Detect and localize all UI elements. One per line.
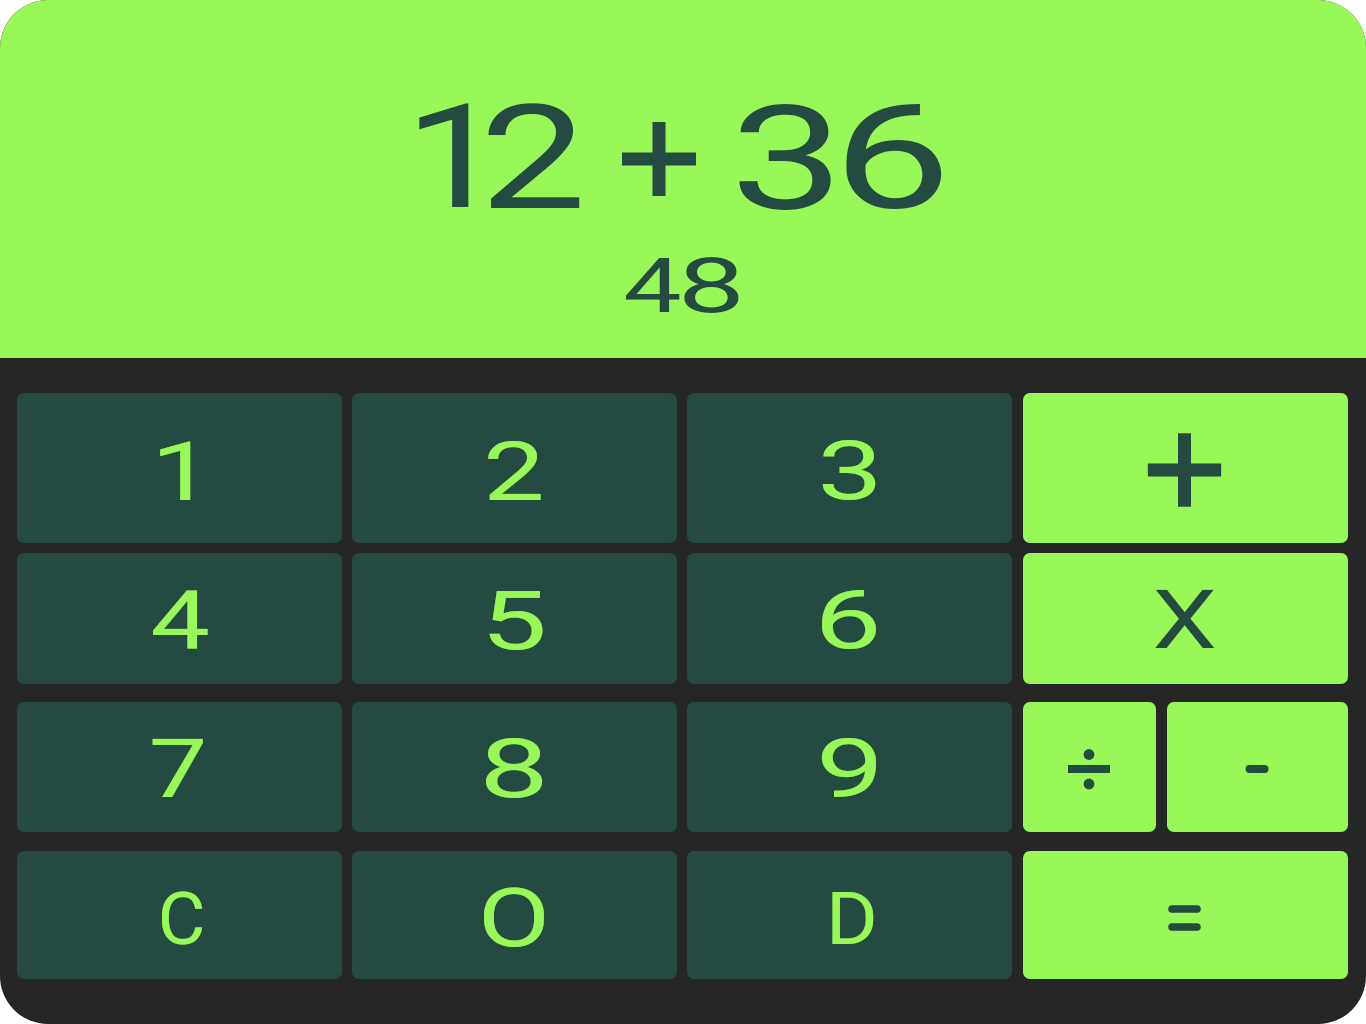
button[interactable]: Three bbox=[687, 393, 1012, 543]
staticText: D bbox=[826, 877, 878, 961]
staticText: C bbox=[158, 877, 205, 961]
staticText: 1 bbox=[151, 425, 213, 520]
staticText: 8 bbox=[479, 722, 549, 817]
staticText: 2 bbox=[483, 425, 545, 520]
button[interactable]: Eight bbox=[352, 702, 677, 832]
staticText: 4 bbox=[623, 241, 682, 330]
staticText: 5 bbox=[480, 574, 547, 669]
button[interactable]: One bbox=[17, 393, 342, 543]
button[interactable]: Seven bbox=[17, 702, 342, 832]
staticText: 6 bbox=[832, 73, 952, 243]
button[interactable]: Zero bbox=[352, 851, 677, 979]
button[interactable]: Six bbox=[687, 553, 1012, 684]
button[interactable]: Four bbox=[17, 553, 342, 684]
button[interactable]: Clear bbox=[17, 851, 342, 979]
staticText: 2 bbox=[479, 73, 587, 243]
button[interactable]: Nine bbox=[687, 702, 1012, 832]
button[interactable]: Minus bbox=[1167, 702, 1348, 832]
staticText: 3 bbox=[730, 74, 844, 244]
button[interactable]: Plus bbox=[1023, 393, 1348, 543]
staticText: 8 bbox=[678, 241, 745, 330]
button[interactable]: Five bbox=[352, 553, 677, 684]
button[interactable]: Equals bbox=[1023, 851, 1348, 979]
staticText: 6 bbox=[814, 573, 882, 668]
staticText: 3 bbox=[817, 424, 883, 519]
staticText: X bbox=[1152, 573, 1217, 668]
staticText: 9 bbox=[816, 722, 884, 817]
button[interactable]: Divide bbox=[1023, 702, 1156, 832]
button[interactable]: Two bbox=[352, 393, 677, 543]
button[interactable]: Multiply bbox=[1023, 553, 1348, 684]
staticText: 1 bbox=[404, 72, 506, 242]
staticText: 7 bbox=[148, 722, 207, 817]
staticText: 4 bbox=[150, 574, 210, 669]
staticText: O bbox=[478, 871, 550, 966]
button[interactable]: Delete bbox=[687, 851, 1012, 979]
